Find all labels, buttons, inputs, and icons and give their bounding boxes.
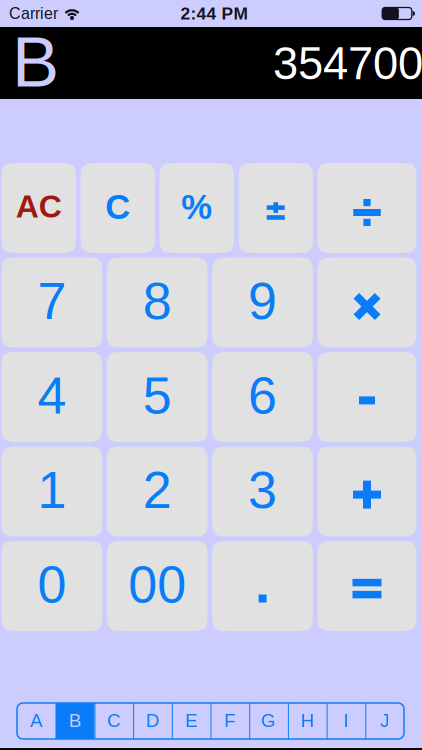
staticText: A	[30, 710, 42, 731]
button[interactable]: Divide	[317, 163, 416, 253]
button[interactable]: 8	[107, 257, 208, 347]
button[interactable]: AC	[1, 163, 76, 253]
staticText: 1	[37, 461, 66, 519]
button[interactable]: 3	[212, 446, 313, 536]
staticText: H	[301, 710, 314, 731]
staticText: C	[105, 188, 130, 226]
staticText: 3	[248, 461, 277, 519]
staticText: AC	[16, 189, 62, 224]
button[interactable]: H	[288, 703, 327, 739]
button[interactable]: 9	[212, 257, 313, 347]
button[interactable]: 1	[1, 446, 102, 536]
staticText: B	[12, 22, 59, 101]
button[interactable]: 5	[107, 352, 208, 442]
button[interactable]: Multiply	[317, 257, 416, 347]
button[interactable]: C	[80, 163, 155, 253]
button[interactable]: E	[172, 703, 210, 739]
button[interactable]: 4	[1, 352, 102, 442]
staticText: 8	[143, 272, 172, 330]
button[interactable]: Minus	[317, 352, 416, 442]
staticText: E	[185, 710, 197, 731]
staticText: 2:44 PM	[180, 4, 247, 23]
staticText: J	[380, 710, 389, 731]
button[interactable]: G	[249, 703, 288, 739]
button[interactable]: Plus or minus	[238, 163, 313, 253]
staticText: 2	[143, 461, 172, 519]
staticText: 0	[37, 555, 66, 614]
button[interactable]: %	[159, 163, 234, 253]
staticText: 354700	[273, 38, 422, 89]
button[interactable]: 6	[212, 352, 313, 442]
staticText: G	[261, 710, 276, 731]
staticText: %	[181, 188, 212, 226]
button[interactable]: I	[327, 703, 365, 739]
button[interactable]: F	[210, 703, 249, 739]
staticText: 7	[37, 272, 66, 330]
staticText: C	[107, 710, 120, 731]
staticText: 9	[248, 272, 277, 330]
button[interactable]: 00	[107, 541, 208, 631]
staticText: D	[146, 710, 159, 731]
button[interactable]: Decimal point	[212, 541, 313, 631]
button[interactable]: C	[94, 703, 133, 739]
button[interactable]: 0	[1, 541, 102, 631]
staticText: Carrier	[9, 5, 58, 22]
button[interactable]: 2	[107, 446, 208, 536]
staticText: I	[343, 710, 348, 731]
staticText: 5	[143, 366, 172, 425]
button[interactable]: D	[133, 703, 172, 739]
button[interactable]: Equals	[317, 541, 416, 631]
button[interactable]: 7	[1, 257, 102, 347]
button[interactable]: A	[17, 703, 56, 739]
staticText: F	[224, 710, 235, 731]
staticText: 6	[248, 366, 277, 425]
staticText: 4	[37, 366, 66, 425]
button[interactable]: Plus	[317, 446, 416, 536]
staticText: 00	[128, 555, 186, 614]
button[interactable]: J	[365, 703, 404, 739]
staticText: B	[69, 710, 81, 731]
button[interactable]: B	[56, 703, 94, 739]
